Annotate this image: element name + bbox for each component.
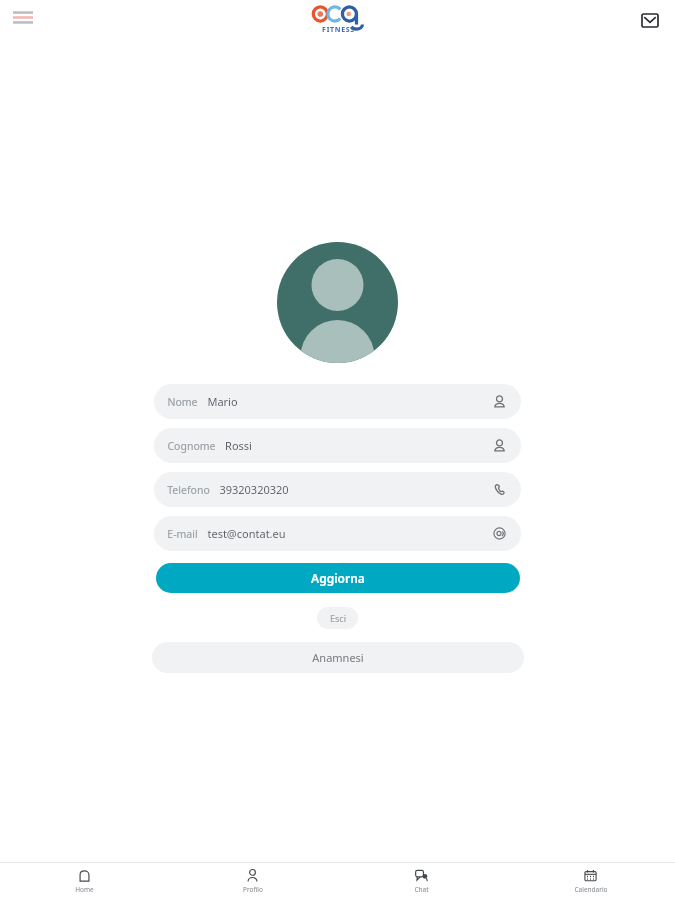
staticText: Aggiorna <box>311 570 365 586</box>
staticText: Telefono <box>167 483 210 497</box>
staticText: E-mail <box>167 527 198 541</box>
button[interactable]: Esci <box>317 607 358 629</box>
button[interactable]: Anamnesi <box>152 642 524 673</box>
staticText: Nome <box>167 395 198 409</box>
button[interactable]: Aggiorna <box>156 563 520 593</box>
button[interactable]: Messaggi <box>633 3 667 37</box>
button[interactable]: Menu <box>4 0 42 34</box>
staticText: Chat <box>414 885 429 894</box>
staticText: Calendario <box>574 885 608 894</box>
button[interactable]: Foto profilo <box>277 242 398 363</box>
staticText: Esci <box>330 612 346 624</box>
button[interactable]: Home <box>0 863 168 900</box>
staticText: test@contat.eu <box>207 526 286 541</box>
staticText: Anamnesi <box>312 650 364 665</box>
staticText: Profilo <box>243 885 263 894</box>
staticText: Mario <box>207 394 238 409</box>
staticText: 39320320320 <box>219 482 289 497</box>
button[interactable]: Profilo <box>168 863 337 900</box>
button[interactable]: Chat <box>337 863 506 900</box>
button[interactable]: Cognome <box>154 428 521 463</box>
button[interactable]: Calendario <box>506 863 675 900</box>
button[interactable]: Nome <box>154 384 521 419</box>
staticText: Rossi <box>225 438 252 453</box>
staticText: FITNESS <box>322 25 355 35</box>
staticText: Cognome <box>167 439 216 453</box>
button[interactable]: E-mail <box>154 516 521 551</box>
staticText: Home <box>75 885 94 894</box>
button[interactable]: Telefono <box>154 472 521 507</box>
